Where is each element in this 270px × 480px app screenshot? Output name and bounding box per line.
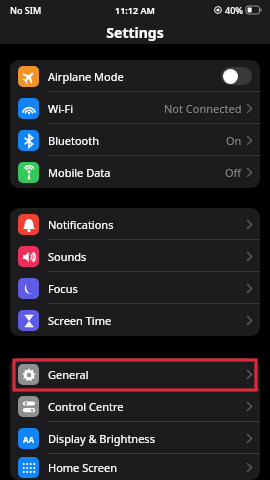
staticText: Focus bbox=[48, 281, 78, 296]
button[interactable]: Sounds bbox=[10, 240, 260, 272]
staticText: No SIM bbox=[10, 4, 42, 16]
staticText: Notifications bbox=[48, 217, 114, 232]
button[interactable]: AA bbox=[10, 422, 260, 454]
button[interactable]: Notifications bbox=[10, 208, 260, 240]
button[interactable]: Focus bbox=[10, 272, 260, 304]
staticText: Home Screen bbox=[48, 460, 118, 475]
button[interactable]: Control Centre bbox=[10, 390, 260, 422]
staticText: On bbox=[226, 133, 242, 148]
staticText: Wi-Fi bbox=[48, 101, 74, 116]
button[interactable]: Home Screen bbox=[10, 454, 260, 480]
staticText: 40% bbox=[225, 4, 243, 16]
staticText: General bbox=[48, 367, 89, 382]
button[interactable]: Screen Time bbox=[10, 304, 260, 336]
staticText: Mobile Data bbox=[48, 165, 111, 180]
button[interactable]: Airplane Mode toggle bbox=[221, 67, 252, 85]
staticText: Settings bbox=[106, 23, 164, 42]
staticText: Display & Brightness bbox=[48, 431, 155, 446]
staticText: Bluetooth bbox=[48, 133, 100, 148]
button[interactable]: Wi-Fi bbox=[10, 92, 260, 124]
button[interactable]: Mobile Data bbox=[10, 156, 260, 188]
staticText: Not Connected bbox=[164, 101, 242, 116]
button[interactable]: General bbox=[10, 358, 260, 390]
staticText: Screen Time bbox=[48, 313, 112, 328]
staticText: Sounds bbox=[48, 249, 87, 264]
staticText: Airplane Mode bbox=[48, 69, 124, 84]
staticText: 11:12 AM bbox=[115, 4, 155, 16]
staticText: Control Centre bbox=[48, 399, 124, 414]
staticText: AA bbox=[23, 434, 35, 445]
button[interactable]: Bluetooth bbox=[10, 124, 260, 156]
staticText: Off bbox=[225, 165, 242, 180]
button[interactable]: Airplane Mode bbox=[10, 60, 260, 92]
